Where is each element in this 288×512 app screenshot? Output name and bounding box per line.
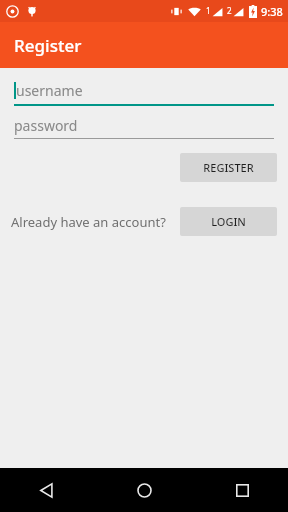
staticText: 9:38 <box>261 4 283 19</box>
staticText: password <box>14 116 78 135</box>
staticText: Register <box>14 34 82 57</box>
button[interactable]: Back <box>24 468 68 512</box>
button[interactable]: Home <box>122 468 166 512</box>
button[interactable]: password <box>14 112 274 138</box>
staticText: username <box>16 81 83 100</box>
button[interactable]: LOGIN <box>180 207 277 236</box>
staticText: 1 <box>206 5 211 16</box>
button[interactable]: Recent apps <box>220 468 264 512</box>
staticText: LOGIN <box>211 214 246 229</box>
button[interactable]: REGISTER <box>180 153 277 182</box>
staticText: Already have an account? <box>11 213 166 231</box>
staticText: REGISTER <box>203 160 254 175</box>
button[interactable]: username <box>14 77 274 104</box>
staticText: 2 <box>227 5 232 16</box>
